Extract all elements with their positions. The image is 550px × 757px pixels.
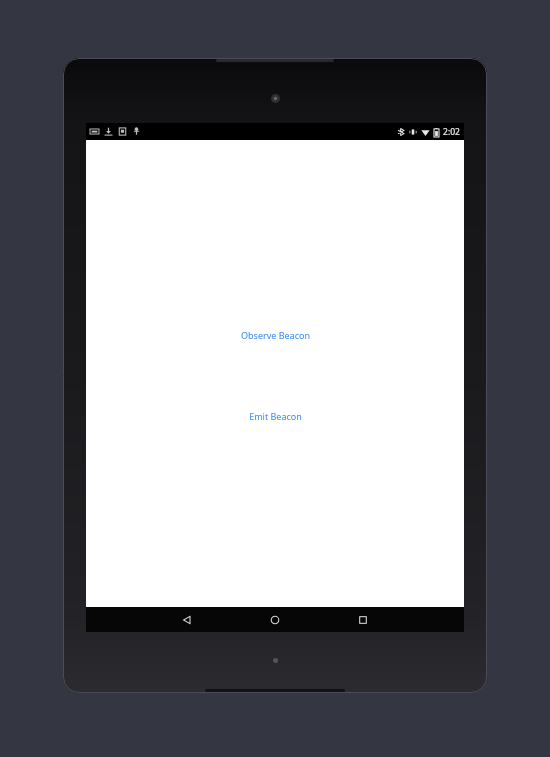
staticText: Emit Beacon: [249, 410, 302, 422]
button[interactable]: Recent apps: [346, 607, 380, 632]
button[interactable]: Emit Beacon: [239, 406, 312, 426]
button[interactable]: Back: [170, 607, 204, 632]
staticText: Observe Beacon: [241, 329, 310, 341]
button[interactable]: Home: [258, 607, 292, 632]
staticText: 2:02: [443, 126, 460, 138]
button[interactable]: Observe Beacon: [231, 325, 320, 345]
